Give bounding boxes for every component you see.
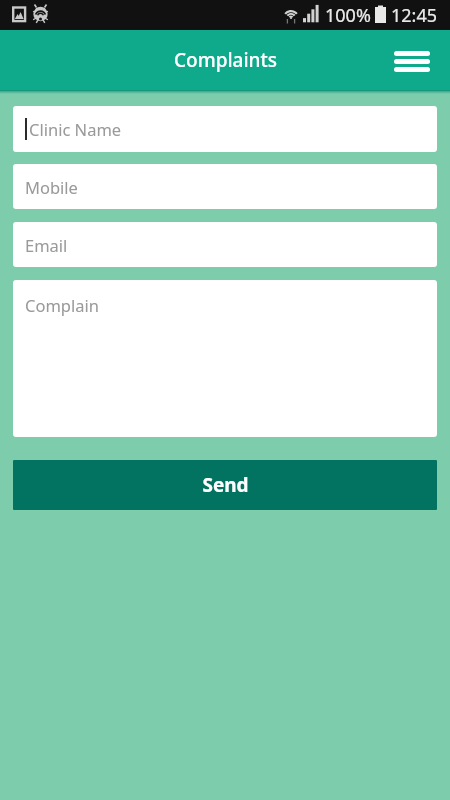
staticText: 100% [325, 3, 371, 28]
staticText: 12:45 [391, 3, 438, 28]
staticText: Send [202, 472, 249, 498]
button[interactable]: Clinic Name [13, 106, 437, 152]
button[interactable]: Email [13, 222, 437, 267]
staticText: Complaints [174, 47, 277, 73]
button[interactable]: Mobile [13, 164, 437, 209]
staticText: Clinic Name [29, 118, 122, 140]
button[interactable]: Complain [13, 280, 437, 437]
button[interactable]: Send [13, 460, 437, 510]
staticText: Complain [25, 294, 99, 316]
staticText: Email [25, 234, 68, 256]
staticText: Mobile [25, 176, 78, 198]
button[interactable]: Menu [390, 30, 446, 90]
